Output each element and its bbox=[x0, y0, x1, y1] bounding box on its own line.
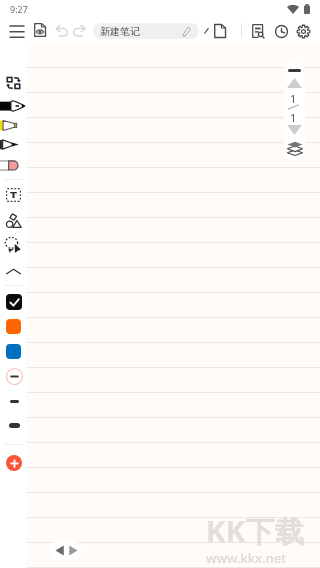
button[interactable]: Eraser bbox=[0, 158, 27, 171]
button[interactable]: Marker bbox=[0, 138, 27, 151]
staticText: 1 bbox=[290, 110, 297, 125]
button[interactable]: Thick stroke bbox=[5, 418, 23, 433]
button[interactable]: Undo bbox=[54, 24, 68, 37]
button[interactable]: 新建笔记 bbox=[93, 23, 199, 39]
staticText: 新建笔记 bbox=[100, 25, 140, 38]
staticText: www.kkx.net bbox=[206, 549, 287, 567]
button[interactable]: Highlighter bbox=[0, 119, 27, 132]
button[interactable]: Lasso select bbox=[0, 236, 27, 254]
button[interactable]: Recent bbox=[274, 24, 288, 38]
button[interactable]: Redo bbox=[72, 24, 86, 37]
button[interactable]: Black colour bbox=[6, 294, 22, 310]
button[interactable]: Settings bbox=[296, 24, 310, 38]
button[interactable]: Add colour bbox=[6, 455, 22, 471]
button[interactable]: Blue colour bbox=[6, 344, 21, 359]
button[interactable]: Menu bbox=[9, 23, 24, 39]
button[interactable]: Shapes bbox=[0, 211, 27, 229]
button[interactable]: Text box bbox=[0, 186, 27, 204]
staticText: 9:27 bbox=[10, 3, 28, 15]
staticText: 1 bbox=[290, 91, 297, 106]
button[interactable]: Collapse bbox=[0, 262, 27, 280]
button[interactable]: Fountain pen bbox=[0, 99, 27, 112]
staticText: KK下载 bbox=[206, 511, 305, 551]
button[interactable]: Pan left or right bbox=[50, 541, 82, 559]
button[interactable]: Next page bbox=[286, 123, 303, 136]
button[interactable]: Thin stroke bbox=[5, 394, 23, 408]
button[interactable]: Preview bbox=[33, 22, 47, 38]
button[interactable]: Decrease width bbox=[5, 367, 23, 385]
button[interactable]: Drag handle bbox=[288, 69, 301, 72]
button[interactable]: Transform bbox=[0, 75, 27, 91]
button[interactable]: Previous page bbox=[286, 76, 303, 89]
button[interactable]: New page bbox=[213, 23, 226, 38]
button[interactable]: Orange colour bbox=[6, 319, 21, 334]
button[interactable]: Search notes bbox=[251, 23, 265, 38]
button[interactable]: Layers bbox=[285, 140, 304, 156]
